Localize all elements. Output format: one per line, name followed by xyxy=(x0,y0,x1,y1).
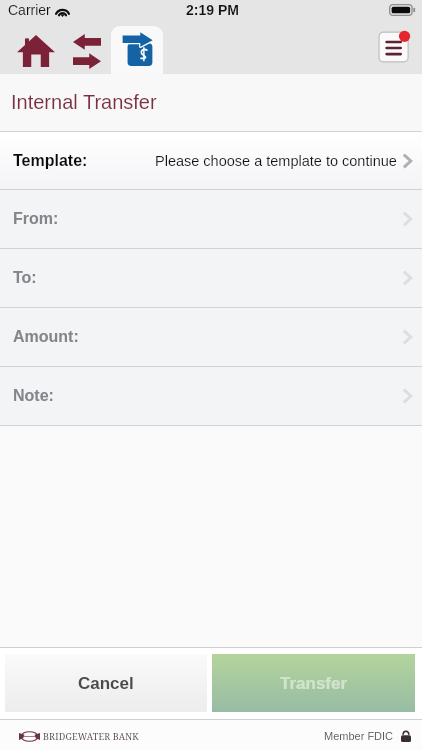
staticText: Carrier xyxy=(8,2,51,18)
staticText: 2:19 PM xyxy=(186,2,239,18)
staticText: BRIDGEWATER BANK xyxy=(43,730,139,742)
button[interactable]: Menu xyxy=(377,31,411,65)
staticText: Member FDIC xyxy=(324,730,394,742)
button[interactable]: Template: xyxy=(0,132,422,189)
button[interactable]: Internal Transfer xyxy=(111,22,163,74)
button[interactable]: Home xyxy=(10,22,62,74)
staticText: Transfer xyxy=(280,674,348,693)
button[interactable]: Note: xyxy=(0,367,422,425)
staticText: Please choose a template to continue xyxy=(155,153,397,169)
button[interactable]: To: xyxy=(0,249,422,307)
button[interactable]: Amount: xyxy=(0,308,422,366)
button[interactable]: From: xyxy=(0,190,422,248)
staticText: Cancel xyxy=(78,674,134,693)
staticText: To: xyxy=(13,269,37,287)
button[interactable]: Transfer xyxy=(212,654,415,712)
staticText: Note: xyxy=(13,387,54,405)
button[interactable]: Transfers xyxy=(61,22,113,74)
staticText: Template: xyxy=(13,152,88,170)
staticText: Internal Transfer xyxy=(11,91,157,113)
staticText: Amount: xyxy=(13,328,79,346)
staticText: From: xyxy=(13,210,59,228)
button[interactable]: Cancel xyxy=(5,654,207,712)
